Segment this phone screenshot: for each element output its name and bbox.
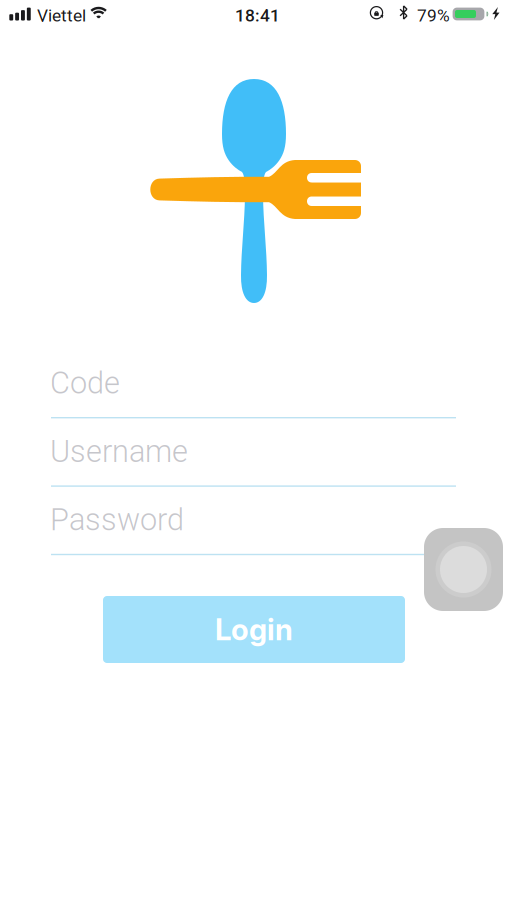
button[interactable]: Code bbox=[51, 365, 456, 418]
button[interactable]: Username bbox=[51, 433, 456, 487]
staticText: Login bbox=[215, 612, 293, 647]
staticText: Username bbox=[50, 433, 188, 469]
staticText: Password bbox=[50, 502, 184, 538]
staticText: Code bbox=[50, 365, 120, 401]
button[interactable]: Password bbox=[51, 502, 456, 555]
button[interactable]: Login bbox=[103, 596, 405, 663]
staticText: 18:41 bbox=[235, 5, 280, 26]
staticText: Viettel bbox=[37, 5, 86, 26]
staticText: 79% bbox=[417, 5, 450, 26]
button[interactable]: AssistiveTouch bbox=[424, 528, 503, 611]
